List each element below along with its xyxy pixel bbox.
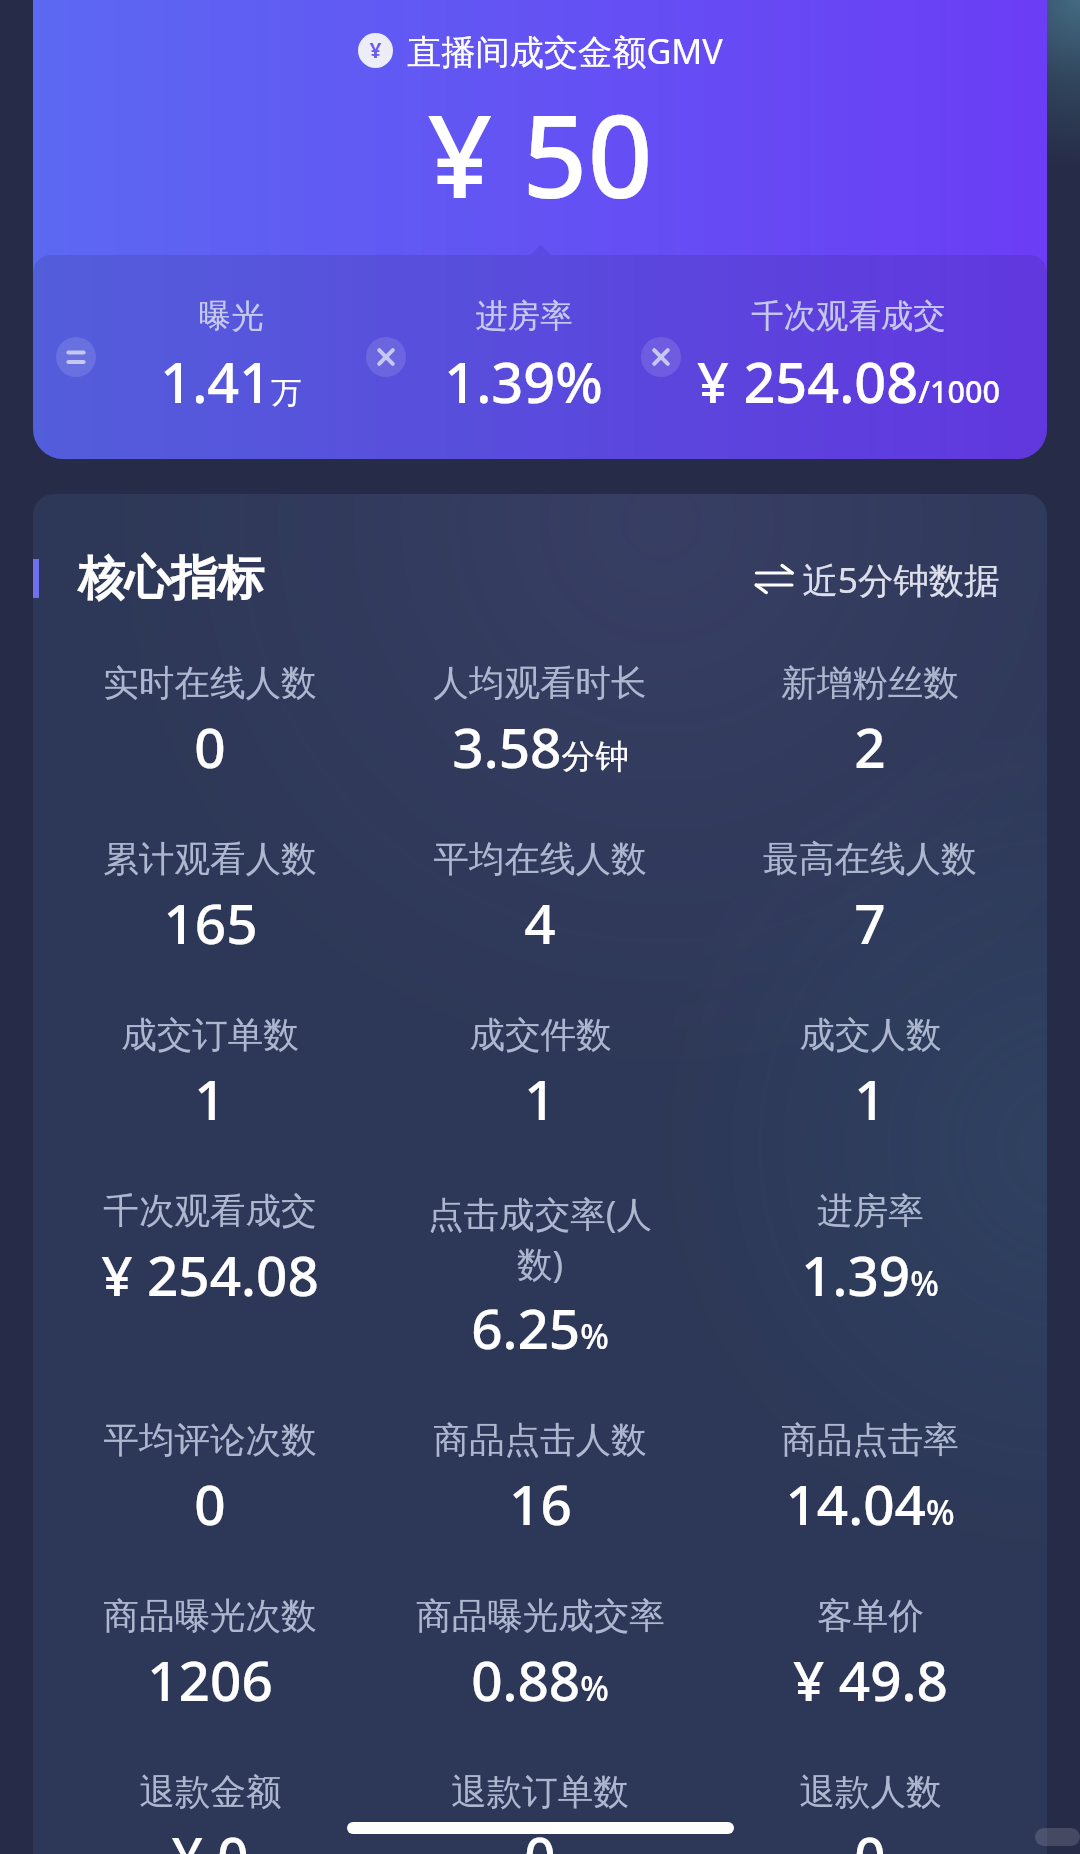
staticText: 1.39% [801, 1237, 939, 1312]
staticText: 商品点击人数 [433, 1418, 647, 1463]
staticText: 成交订单数 [121, 1013, 299, 1058]
button[interactable]: 商品点击人数 [414, 1418, 666, 1541]
staticText: 0 [854, 1818, 886, 1854]
button[interactable]: ¥ [33, 0, 1047, 459]
button[interactable]: 累计观看人数 [84, 837, 336, 960]
other: Switch data range [754, 559, 794, 599]
staticText: 0.88% [471, 1642, 609, 1717]
staticText: 6.25% [471, 1290, 609, 1365]
staticText: 2 [854, 709, 886, 784]
staticText: 进房率 [817, 1189, 924, 1234]
button[interactable]: 平均在线人数 [414, 837, 666, 960]
staticText: 成交件数 [469, 1013, 612, 1058]
staticText: 商品曝光次数 [103, 1594, 317, 1639]
staticText: 0 [194, 1466, 226, 1541]
staticText: 人均观看时长 [433, 661, 647, 706]
staticText: 0 [194, 709, 226, 784]
other: equals [56, 337, 96, 377]
button[interactable]: 实时在线人数 [84, 661, 336, 784]
staticText: 千次观看成交 [751, 296, 946, 337]
staticText: ¥ 0 [171, 1818, 249, 1854]
staticText: 平均在线人数 [433, 837, 647, 882]
button[interactable]: 人均观看时长 [414, 661, 666, 784]
staticText: 进房率 [475, 296, 573, 337]
button[interactable]: 最高在线人数 [744, 837, 996, 960]
button[interactable]: 成交件数 [414, 1013, 666, 1136]
other: multiply [366, 337, 406, 377]
staticText: 165 [163, 885, 258, 960]
staticText: 1 [854, 1061, 886, 1136]
staticText: 千次观看成交 [103, 1189, 317, 1234]
staticText: 成交人数 [799, 1013, 942, 1058]
staticText: 新增粉丝数 [781, 661, 959, 706]
staticText: ¥ 50 [427, 76, 653, 231]
button[interactable]: 商品曝光次数 [84, 1594, 336, 1717]
staticText: ¥ 254.08 [101, 1237, 319, 1312]
button[interactable]: 点击成交率(人数) [414, 1189, 666, 1365]
staticText: 点击成交率(人数) [414, 1189, 666, 1287]
staticText: 商品曝光成交率 [416, 1594, 665, 1639]
staticText: 1 [194, 1061, 226, 1136]
button[interactable]: 成交订单数 [84, 1013, 336, 1136]
staticText: 近5分钟数据 [802, 555, 1000, 603]
staticText: 1.39% [444, 343, 603, 419]
staticText: 3.58分钟 [452, 709, 629, 784]
staticText: 实时在线人数 [103, 661, 317, 706]
button[interactable]: 新增粉丝数 [744, 661, 996, 784]
staticText: 客单价 [817, 1594, 924, 1639]
button[interactable]: 退款金额 [84, 1770, 336, 1854]
staticText: 7 [854, 885, 886, 960]
staticText: ¥ [369, 36, 382, 65]
button[interactable]: 进房率 [744, 1189, 996, 1312]
staticText: 直播间成交金额GMV [407, 27, 723, 74]
button[interactable]: Switch data range [754, 555, 1000, 603]
staticText: 1.41万 [160, 343, 302, 419]
button[interactable]: 商品点击率 [744, 1418, 996, 1541]
staticText: 最高在线人数 [763, 837, 977, 882]
staticText: 退款人数 [799, 1770, 942, 1815]
staticText: 商品点击率 [781, 1418, 959, 1463]
button[interactable]: 商品曝光成交率 [414, 1594, 666, 1717]
staticText: 16 [509, 1466, 572, 1541]
staticText: 14.04% [785, 1466, 955, 1541]
button[interactable]: 平均评论次数 [84, 1418, 336, 1541]
staticText: 4 [524, 885, 556, 960]
button[interactable]: 退款订单数 [414, 1770, 666, 1854]
button[interactable]: 退款人数 [744, 1770, 996, 1854]
button[interactable]: 千次观看成交 [84, 1189, 336, 1312]
button[interactable]: 客单价 [744, 1594, 996, 1717]
button[interactable]: 成交人数 [744, 1013, 996, 1136]
staticText: ¥ 254.08/1000 [697, 343, 1000, 419]
staticText: 核心指标 [78, 549, 264, 608]
staticText: 1206 [147, 1642, 273, 1717]
staticText: 0 [524, 1818, 556, 1854]
staticText: 平均评论次数 [103, 1418, 317, 1463]
staticText: 累计观看人数 [103, 837, 317, 882]
staticText: 退款订单数 [451, 1770, 629, 1815]
staticText: ¥ 49.8 [793, 1642, 948, 1717]
other: multiply [641, 337, 681, 377]
staticText: 退款金额 [139, 1770, 282, 1815]
staticText: 1 [524, 1061, 556, 1136]
staticText: 曝光 [199, 296, 264, 337]
